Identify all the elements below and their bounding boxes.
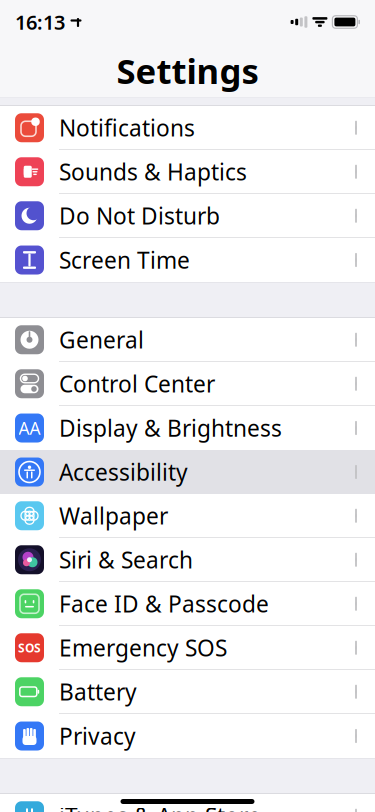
staticText: Face ID & Passcode [59, 589, 269, 619]
button[interactable]: Battery [0, 670, 375, 714]
button[interactable]: Siri & Search [0, 538, 375, 582]
button[interactable]: Do Not Disturb [0, 194, 375, 238]
staticText: 16:13 [15, 9, 65, 35]
button[interactable]: Wallpaper [0, 494, 375, 538]
staticText: Screen Time [59, 245, 190, 275]
staticText: SOS [18, 640, 41, 656]
button[interactable]: Screen Time [0, 238, 375, 282]
staticText: Privacy [59, 721, 136, 751]
staticText: General [59, 325, 144, 355]
staticText: Settings [116, 47, 258, 93]
button[interactable]: Sounds & Haptics [0, 150, 375, 194]
staticText: AA [18, 416, 40, 439]
staticText: Emergency SOS [59, 633, 227, 663]
button[interactable]: Privacy [0, 714, 375, 758]
button[interactable]: AA [0, 406, 375, 450]
button[interactable]: SOS [0, 626, 375, 670]
staticText: Control Center [59, 369, 215, 399]
staticText: iTunes & App Store [59, 801, 261, 812]
staticText: Do Not Disturb [59, 201, 220, 231]
button[interactable]: General [0, 318, 375, 362]
button[interactable]: Control Center [0, 362, 375, 406]
staticText: Wallpaper [59, 501, 168, 531]
button[interactable]: Accessibility [0, 450, 375, 494]
staticText: Notifications [59, 113, 195, 143]
staticText: Battery [59, 677, 137, 707]
staticText: Accessibility [59, 457, 188, 487]
staticText: Siri & Search [59, 545, 193, 575]
staticText: Sounds & Haptics [59, 157, 247, 187]
button[interactable]: Notifications [0, 106, 375, 150]
button[interactable]: Face ID & Passcode [0, 582, 375, 626]
staticText: Display & Brightness [59, 413, 282, 443]
button[interactable]: iTunes & App Store [0, 794, 375, 812]
